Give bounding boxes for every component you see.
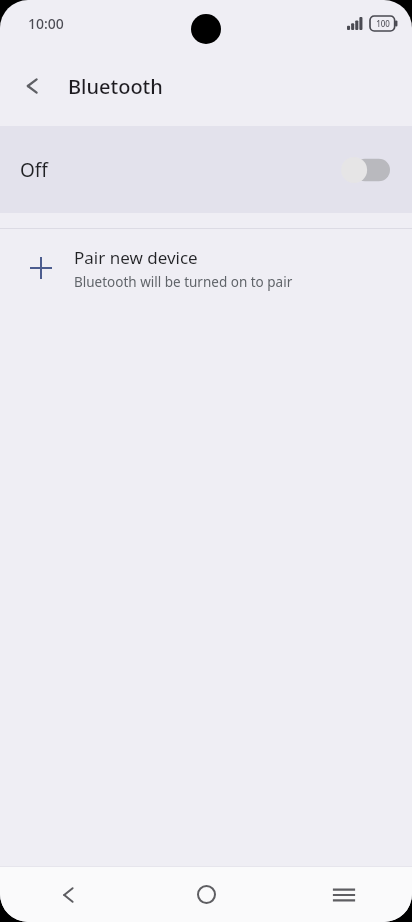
- staticText: Bluetooth will be turned on to pair: [74, 273, 293, 291]
- button[interactable]: Back: [10, 62, 58, 110]
- button[interactable]: Recent apps: [275, 867, 412, 922]
- staticText: 10:00: [28, 14, 64, 33]
- button[interactable]: Back: [0, 867, 138, 922]
- other: Bluetooth toggle: [338, 157, 390, 183]
- staticText: 100: [376, 18, 390, 29]
- button[interactable]: Home: [138, 867, 275, 922]
- staticText: Pair new device: [74, 246, 198, 269]
- staticText: Bluetooth: [68, 73, 163, 100]
- button[interactable]: Off: [0, 126, 412, 213]
- button[interactable]: Pair new device: [0, 229, 412, 307]
- staticText: Off: [20, 157, 48, 183]
